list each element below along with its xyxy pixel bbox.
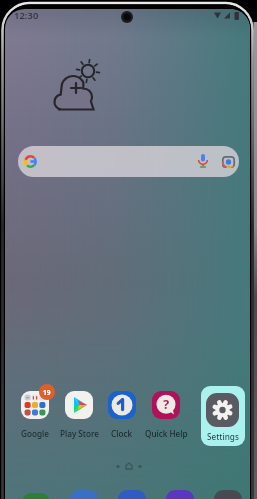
button[interactable]	[22, 493, 50, 499]
staticText: 12:30	[14, 9, 39, 22]
staticText: Clock	[111, 428, 133, 439]
staticText: Settings	[207, 431, 239, 442]
button[interactable]	[118, 490, 146, 499]
button[interactable]	[70, 490, 98, 499]
button[interactable]	[206, 393, 239, 427]
button[interactable]	[201, 386, 245, 446]
staticText: ?	[163, 395, 170, 413]
staticText: Quick Help	[145, 428, 188, 439]
staticText: Play Store	[60, 428, 99, 439]
button[interactable]	[166, 490, 194, 499]
button[interactable]	[21, 391, 49, 419]
staticText: Google	[21, 428, 49, 439]
button[interactable]	[65, 391, 93, 419]
button[interactable]: ?	[152, 391, 180, 419]
staticText: 19	[43, 388, 51, 397]
button[interactable]	[18, 146, 239, 177]
button[interactable]	[108, 391, 136, 419]
button[interactable]	[214, 490, 242, 499]
